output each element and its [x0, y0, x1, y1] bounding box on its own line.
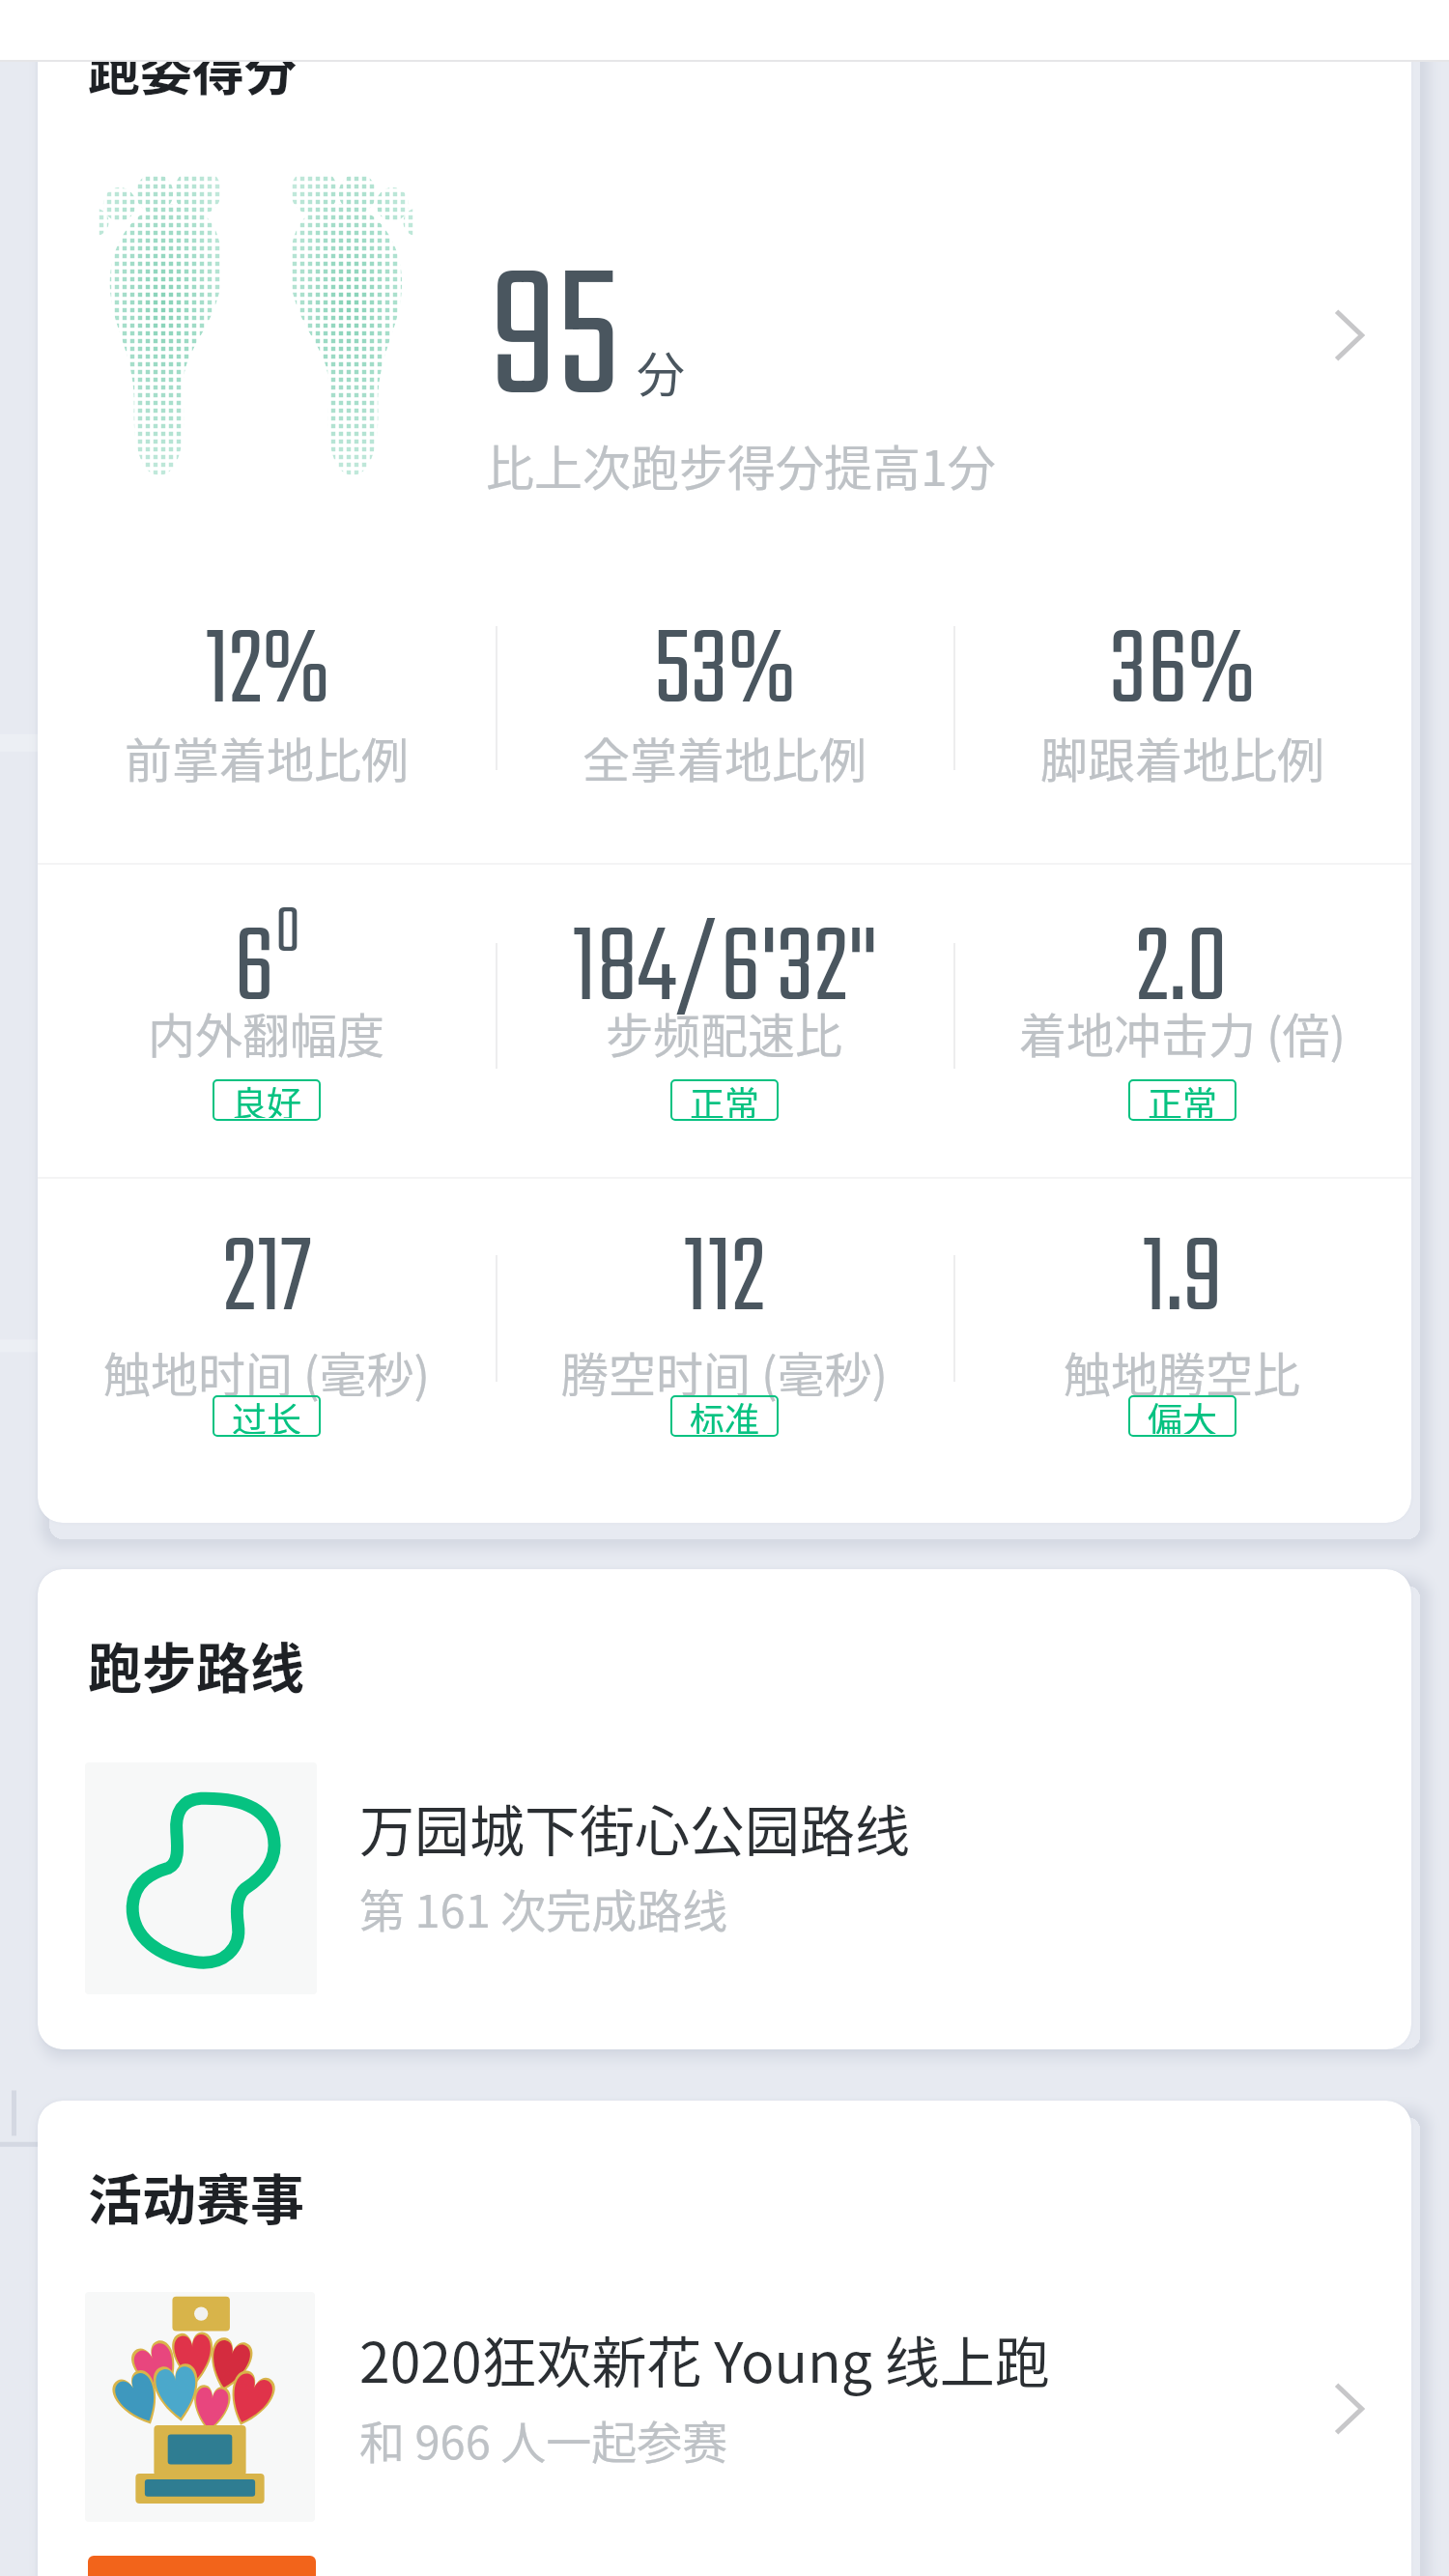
staticText: 触地时间 (毫秒): [103, 1337, 431, 1406]
staticText: 95: [490, 205, 620, 484]
button[interactable]: 跑步路线: [38, 1569, 1411, 2049]
staticText: 1.9: [1142, 1198, 1223, 1364]
staticText: 偏大: [1148, 1392, 1218, 1434]
staticText: 着地冲击力 (倍): [1019, 998, 1347, 1067]
staticText: 12%: [205, 590, 329, 757]
staticText: 过长: [232, 1392, 302, 1434]
staticText: 112: [683, 1198, 766, 1364]
staticText: 53%: [654, 590, 795, 757]
staticText: 36%: [1110, 590, 1255, 757]
staticText: 腾空时间 (毫秒): [561, 1337, 889, 1406]
staticText: 前掌着地比例: [125, 723, 410, 791]
staticText: 2.0: [1136, 888, 1229, 1054]
staticText: 触地腾空比: [1064, 1337, 1301, 1406]
button[interactable]: 查看跑姿得分详情: [1295, 282, 1402, 388]
staticText: 万园城下街心公园路线: [359, 1788, 910, 1868]
staticText: 跑步路线: [88, 1625, 304, 1703]
staticText: 217: [223, 1198, 311, 1364]
staticText: 正常: [690, 1076, 760, 1118]
staticText: 跑姿得分: [88, 30, 297, 105]
button[interactable]: 查看赛事详情: [1295, 2356, 1402, 2462]
staticText: 比上次跑步得分提高1分: [486, 430, 996, 500]
staticText: 6: [234, 888, 275, 1054]
staticText: 标准: [690, 1392, 760, 1434]
staticText: 脚跟着地比例: [1040, 723, 1325, 791]
staticText: 和 966 人一起参赛: [359, 2406, 728, 2472]
staticText: 第 161 次完成路线: [359, 1875, 728, 1940]
staticText: 全掌着地比例: [582, 723, 867, 791]
staticText: 0: [275, 884, 300, 984]
staticText: 活动赛事: [88, 2157, 304, 2235]
staticText: 正常: [1148, 1076, 1218, 1118]
staticText: 步频配速比: [606, 998, 843, 1067]
staticText: 分: [637, 336, 685, 406]
staticText: 内外翻幅度: [148, 998, 385, 1067]
staticText: 良好: [232, 1076, 302, 1118]
staticText: 2020狂欢新花 Young 线上跑: [359, 2319, 1050, 2399]
staticText: 184/6'32": [572, 888, 878, 1054]
